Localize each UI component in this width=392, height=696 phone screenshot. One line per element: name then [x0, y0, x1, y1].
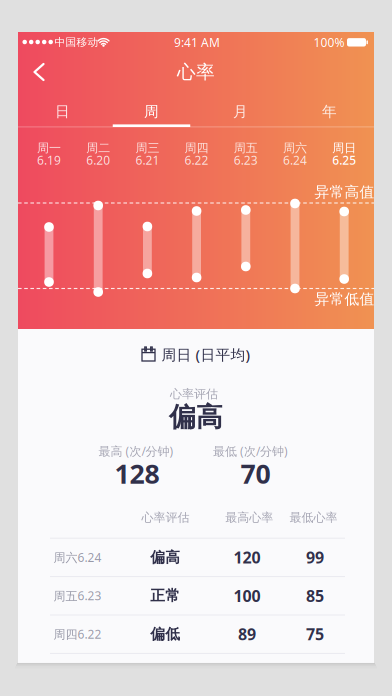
button[interactable]: 周	[107, 96, 196, 126]
staticText: 100%	[313, 34, 344, 50]
staticText: 心率评估	[170, 387, 218, 401]
staticText: 周三	[135, 141, 159, 155]
button[interactable]: 周日 (日平均)	[134, 339, 258, 369]
staticText: 偏低	[150, 625, 180, 643]
staticText: 99	[306, 547, 324, 568]
staticText: 75	[306, 623, 324, 645]
staticText: 128	[114, 456, 159, 491]
staticText: 心率	[177, 60, 215, 83]
staticText: 6.19	[37, 152, 61, 168]
staticText: 85	[306, 585, 324, 606]
staticText: 年	[322, 102, 337, 120]
staticText: 周四6.22	[53, 626, 101, 642]
staticText: 120	[233, 547, 260, 568]
staticText: 6.20	[86, 152, 110, 168]
staticText: 89	[238, 623, 256, 645]
staticText: 最高 (次/分钟)	[98, 443, 173, 459]
button[interactable]: 日	[18, 96, 107, 126]
staticText: 6.21	[135, 152, 159, 168]
staticText: 最低心率	[290, 510, 338, 525]
staticText: 周二	[86, 141, 110, 155]
button[interactable]: 周一	[24, 137, 74, 171]
staticText: 周一	[37, 141, 61, 155]
staticText: 异常低值	[314, 290, 374, 308]
staticText: 周四	[185, 141, 209, 155]
staticText: 6.25	[332, 152, 356, 168]
staticText: 6.22	[185, 152, 209, 168]
staticText: 6.24	[283, 152, 307, 168]
staticText: 周六	[283, 141, 307, 155]
staticText: 100	[233, 585, 260, 606]
staticText: 日	[55, 102, 70, 120]
button[interactable]: 周六	[270, 137, 320, 171]
staticText: 正常	[150, 587, 180, 605]
staticText: 最高心率	[225, 510, 273, 525]
button[interactable]: 周日	[320, 137, 369, 171]
button[interactable]: 周二	[74, 137, 123, 171]
staticText: 周日 (日平均)	[161, 345, 250, 364]
staticText: 周五	[234, 141, 258, 155]
staticText: 中国移动	[54, 36, 98, 49]
staticText: 偏高	[150, 548, 180, 566]
button[interactable]: Back	[22, 52, 55, 92]
staticText: 周日	[332, 141, 356, 155]
button[interactable]: 周四	[172, 137, 221, 171]
button[interactable]: 周五	[221, 137, 270, 171]
staticText: 偏高	[169, 401, 223, 433]
staticText: 周五6.23	[53, 588, 101, 604]
staticText: 最低 (次/分钟)	[213, 443, 288, 459]
staticText: 心率评估	[141, 510, 189, 525]
staticText: 周六6.24	[53, 549, 101, 565]
staticText: 9:41 AM	[174, 34, 220, 50]
staticText: 异常高值	[314, 183, 374, 201]
button[interactable]: 周三	[123, 137, 172, 171]
staticText: 70	[240, 456, 270, 491]
staticText: 6.23	[234, 152, 258, 168]
button[interactable]: 年	[285, 96, 374, 126]
staticText: 月	[233, 102, 248, 120]
staticText: 周	[144, 102, 159, 120]
button[interactable]: 月	[196, 96, 285, 126]
